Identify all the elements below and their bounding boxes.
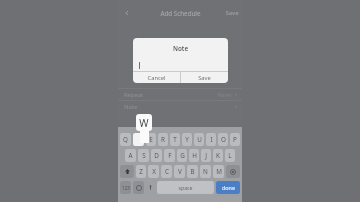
- button[interactable]: F: [164, 149, 175, 162]
- button[interactable]: D: [151, 149, 162, 162]
- button[interactable]: Save: [181, 72, 228, 83]
- button[interactable]: Repeat: [118, 89, 242, 100]
- staticText: Q: [123, 135, 128, 144]
- staticText: Save: [225, 9, 239, 17]
- staticText: Note: [124, 103, 138, 111]
- button[interactable]: Z: [136, 165, 146, 178]
- staticText: N: [203, 167, 208, 176]
- staticText: W: [139, 116, 149, 130]
- staticText: G: [180, 151, 185, 160]
- button[interactable]: Dictate: [146, 181, 155, 194]
- staticText: U: [197, 135, 202, 144]
- button[interactable]: U: [194, 133, 204, 146]
- staticText: V: [178, 167, 182, 176]
- button[interactable]: Cancel: [133, 72, 180, 83]
- button[interactable]: [133, 59, 228, 71]
- button[interactable]: Emoji: [133, 181, 144, 194]
- staticText: L: [228, 151, 232, 160]
- staticText: E: [149, 135, 153, 144]
- staticText: F: [168, 151, 172, 160]
- button[interactable]: R: [158, 133, 168, 146]
- button[interactable]: K: [213, 149, 223, 162]
- button[interactable]: Y: [182, 133, 192, 146]
- button[interactable]: X: [148, 165, 159, 178]
- staticText: I: [210, 135, 213, 144]
- button[interactable]: M: [213, 165, 224, 178]
- staticText: space: [178, 184, 193, 191]
- button[interactable]: A: [125, 149, 136, 162]
- button[interactable]: W: [133, 133, 144, 146]
- button[interactable]: I: [206, 133, 216, 146]
- button[interactable]: 123: [120, 181, 131, 194]
- button[interactable]: S: [138, 149, 149, 162]
- button[interactable]: H: [189, 149, 199, 162]
- button[interactable]: B: [187, 165, 198, 178]
- staticText: D: [154, 151, 159, 160]
- button[interactable]: P: [230, 133, 240, 146]
- button[interactable]: Backspace: [226, 165, 240, 178]
- staticText: Never: [217, 91, 232, 98]
- staticText: J: [205, 151, 207, 160]
- button[interactable]: Q: [120, 133, 131, 146]
- button[interactable]: J: [201, 149, 211, 162]
- staticText: done: [222, 184, 235, 191]
- button[interactable]: L: [225, 149, 235, 162]
- staticText: X: [152, 167, 156, 176]
- button[interactable]: Back: [122, 8, 132, 18]
- staticText: 123: [122, 185, 130, 191]
- staticText: Add Schedule: [160, 9, 201, 17]
- button[interactable]: C: [161, 165, 172, 178]
- button[interactable]: Shift: [120, 165, 134, 178]
- button[interactable]: G: [177, 149, 187, 162]
- staticText: Repeat: [124, 91, 144, 99]
- staticText: K: [216, 151, 220, 160]
- staticText: R: [161, 135, 165, 144]
- staticText: Y: [185, 135, 189, 144]
- staticText: O: [221, 135, 226, 144]
- staticText: P: [233, 135, 237, 144]
- button[interactable]: done: [216, 181, 240, 194]
- staticText: C: [165, 167, 169, 176]
- staticText: A: [128, 151, 133, 160]
- button[interactable]: T: [170, 133, 180, 146]
- button[interactable]: O: [218, 133, 228, 146]
- button[interactable]: E: [146, 133, 156, 146]
- staticText: S: [142, 151, 146, 160]
- staticText: B: [190, 167, 195, 176]
- staticText: Note: [133, 44, 228, 53]
- button[interactable]: N: [200, 165, 211, 178]
- staticText: H: [192, 151, 197, 160]
- button[interactable]: Save: [225, 9, 239, 17]
- button[interactable]: space: [157, 181, 214, 194]
- button[interactable]: V: [174, 165, 185, 178]
- staticText: Z: [139, 167, 143, 176]
- staticText: Cancel: [147, 74, 166, 82]
- staticText: T: [173, 135, 177, 144]
- staticText: Save: [198, 74, 211, 82]
- staticText: M: [216, 167, 222, 176]
